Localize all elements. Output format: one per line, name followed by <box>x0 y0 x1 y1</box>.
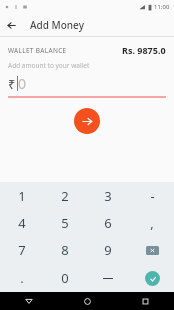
button[interactable]: 4 <box>0 209 43 236</box>
button[interactable]: 8 <box>43 236 86 264</box>
button[interactable]: 9 <box>86 236 130 264</box>
staticText: 1 <box>18 187 26 205</box>
staticText: 8 <box>61 241 69 259</box>
staticText: 3 <box>104 187 112 205</box>
staticText: - <box>150 187 155 205</box>
staticText: ₹ <box>8 75 16 93</box>
staticText: . <box>20 269 24 287</box>
button[interactable]: . <box>0 264 43 292</box>
staticText: , <box>150 214 154 232</box>
button[interactable]: 2 <box>43 182 86 209</box>
button[interactable]: , <box>130 209 174 236</box>
staticText: 2 <box>61 187 69 205</box>
staticText: 0 <box>18 74 27 93</box>
button[interactable]: Back <box>0 292 58 310</box>
staticText: Add amount to your wallet <box>8 61 90 70</box>
button[interactable]: 0 <box>43 264 86 292</box>
button[interactable]: Back <box>0 14 22 36</box>
staticText: 11:00 <box>154 3 170 11</box>
staticText: 0 <box>61 269 69 287</box>
staticText: 6 <box>104 214 112 232</box>
staticText: Add Money <box>30 18 84 32</box>
staticText: Rs. 9875.0 <box>122 44 166 56</box>
button[interactable]: 1 <box>0 182 43 209</box>
staticText: 9 <box>104 241 112 259</box>
button[interactable] <box>86 264 130 292</box>
button[interactable]: Backspace <box>130 236 174 264</box>
button[interactable]: Recents <box>116 292 174 310</box>
button[interactable]: 6 <box>86 209 130 236</box>
button[interactable]: 3 <box>86 182 130 209</box>
button[interactable]: 7 <box>0 236 43 264</box>
button[interactable]: 5 <box>43 209 86 236</box>
staticText: 4 <box>18 214 26 232</box>
staticText: WALLET BALANCE <box>8 46 67 55</box>
button[interactable]: Proceed <box>74 108 100 134</box>
button[interactable]: - <box>130 182 174 209</box>
staticText: 5 <box>61 214 69 232</box>
staticText: 7 <box>18 241 26 259</box>
button[interactable]: Home <box>58 292 116 310</box>
button[interactable]: Enter <box>130 264 174 292</box>
